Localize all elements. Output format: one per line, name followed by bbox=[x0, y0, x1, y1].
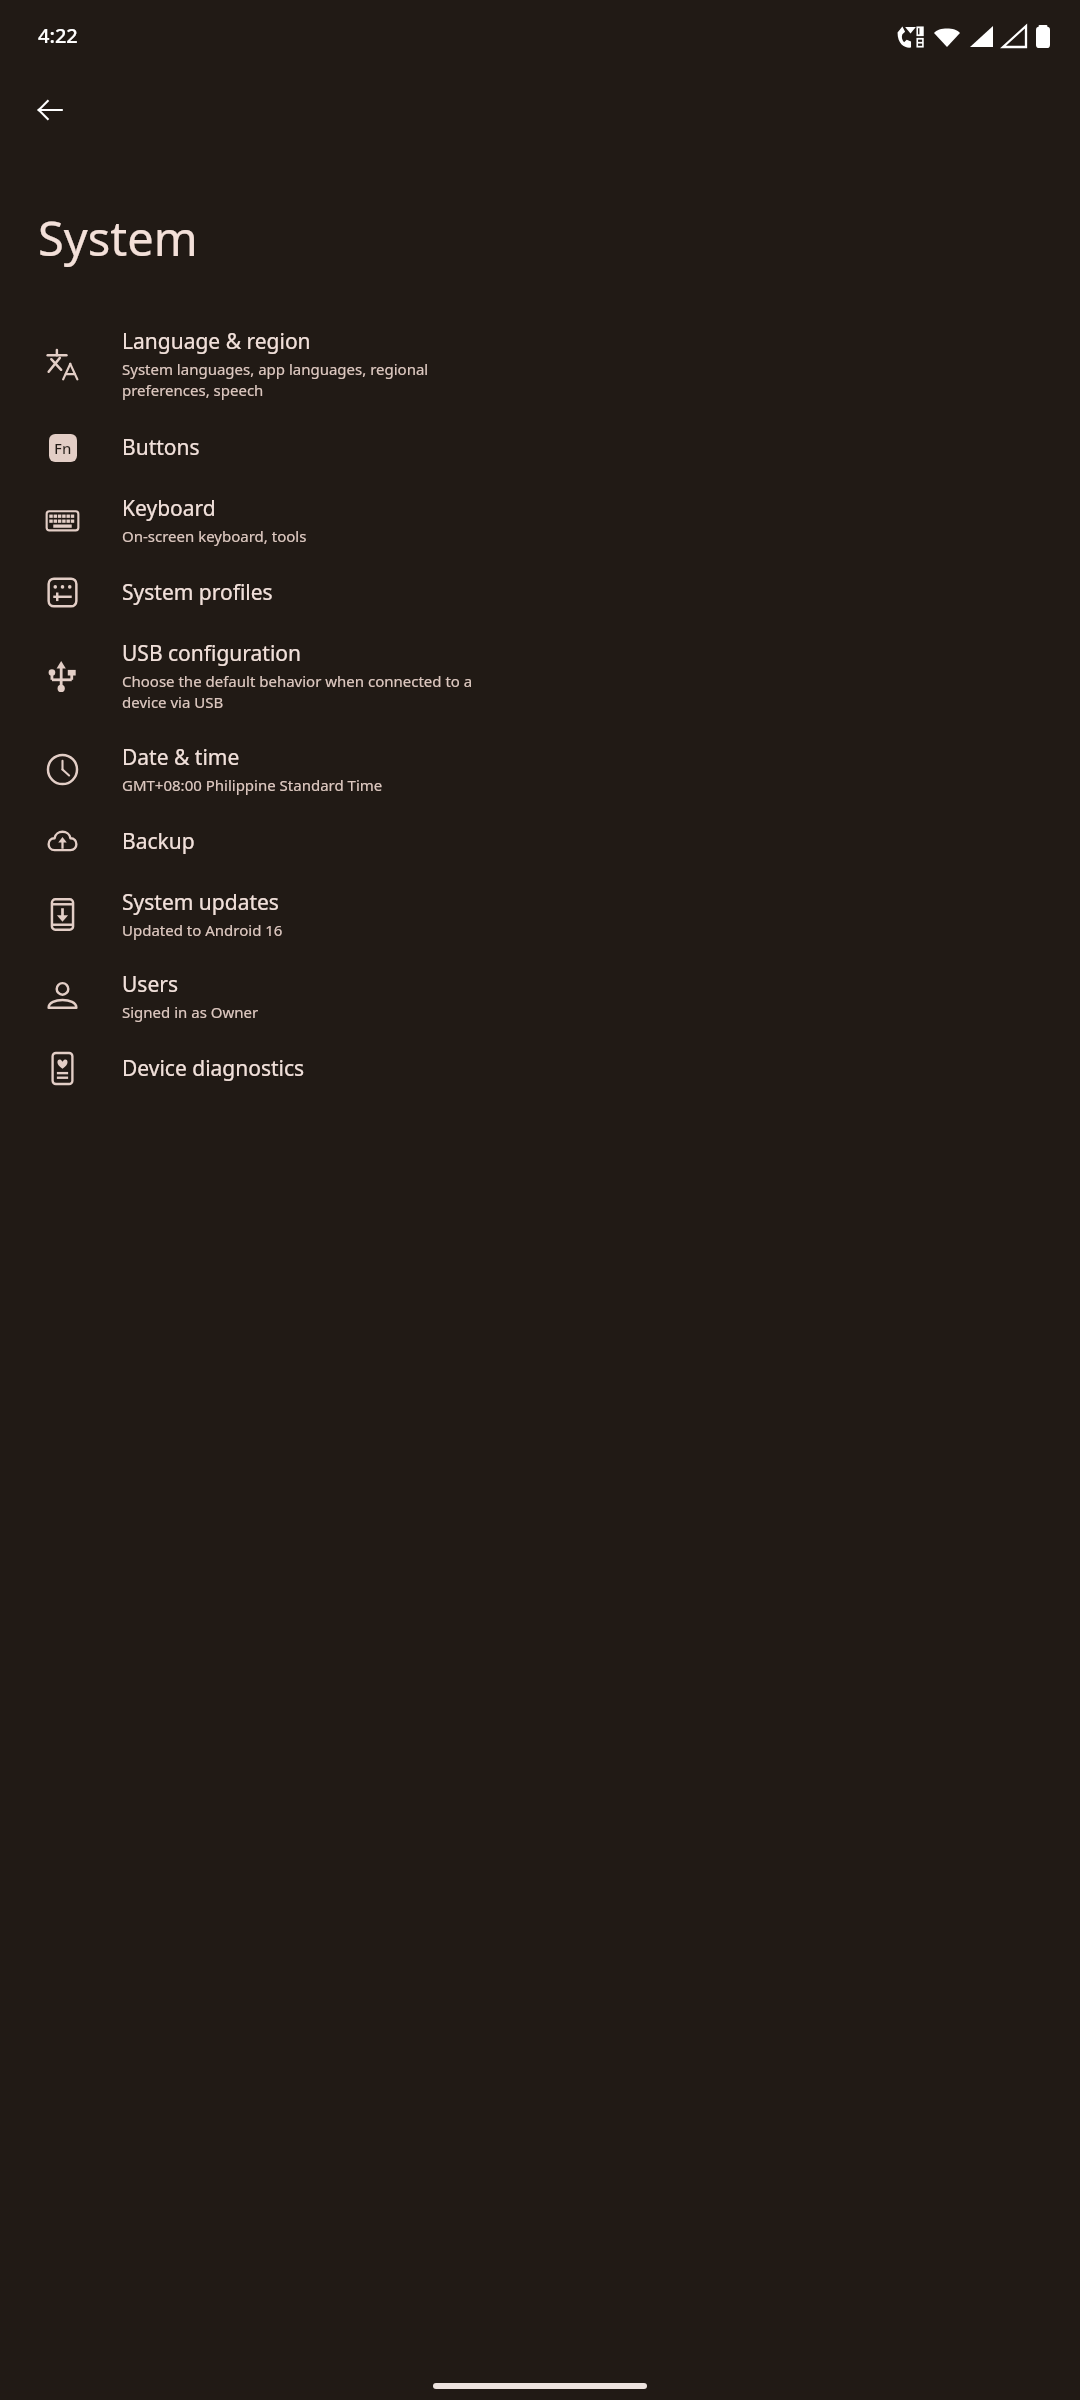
staticText: GMT+08:00 Philippine Standard Time bbox=[122, 775, 383, 795]
button[interactable]: System updates bbox=[0, 873, 1080, 955]
staticText: Users bbox=[122, 970, 178, 999]
staticText: System languages, app languages, regiona… bbox=[122, 359, 429, 401]
button[interactable]: USB configuration bbox=[0, 624, 1080, 728]
staticText: Date & time bbox=[122, 743, 240, 772]
button[interactable]: System profiles bbox=[0, 561, 1080, 624]
button[interactable]: Users bbox=[0, 955, 1080, 1037]
staticText: Choose the default behavior when connect… bbox=[122, 671, 473, 713]
button[interactable]: Keyboard bbox=[0, 479, 1080, 561]
button[interactable]: Language & region bbox=[0, 312, 1080, 416]
button[interactable]: Back bbox=[26, 86, 74, 134]
button[interactable]: Device diagnostics bbox=[0, 1037, 1080, 1100]
staticText: System profiles bbox=[122, 578, 273, 607]
staticText: Backup bbox=[122, 827, 195, 856]
button[interactable]: Backup bbox=[0, 810, 1080, 873]
staticText: Signed in as Owner bbox=[122, 1002, 259, 1022]
staticText: Device diagnostics bbox=[122, 1054, 305, 1083]
staticText: Language & region bbox=[122, 327, 311, 356]
staticText: 4:22 bbox=[38, 22, 78, 49]
staticText: Updated to Android 16 bbox=[122, 920, 283, 940]
staticText: Keyboard bbox=[122, 494, 216, 523]
staticText: System updates bbox=[122, 888, 279, 917]
staticText: Fn bbox=[54, 438, 72, 458]
staticText: On-screen keyboard, tools bbox=[122, 526, 307, 546]
staticText: USB configuration bbox=[122, 639, 302, 668]
staticText: Buttons bbox=[122, 433, 200, 462]
button[interactable]: Date & time bbox=[0, 728, 1080, 810]
staticText: System bbox=[38, 206, 198, 270]
button[interactable]: Fn bbox=[0, 416, 1080, 479]
